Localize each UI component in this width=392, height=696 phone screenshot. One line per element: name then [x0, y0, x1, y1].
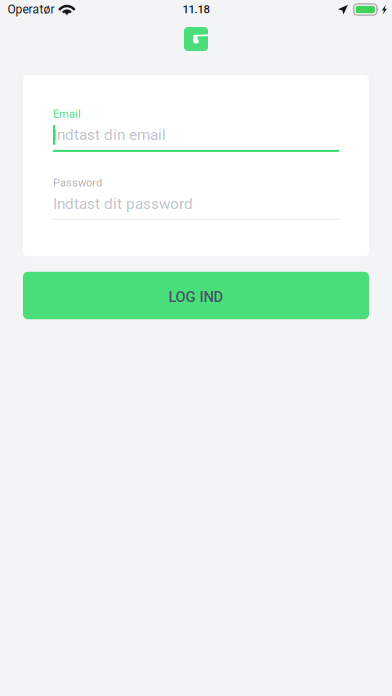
- staticText: Password: [53, 176, 102, 189]
- staticText: Email: [53, 107, 81, 120]
- staticText: 11.18: [182, 3, 209, 16]
- staticText: LOG IND: [168, 288, 223, 306]
- staticText: Operatør: [7, 2, 54, 17]
- button[interactable]: LOG IND: [23, 272, 369, 319]
- staticText: Indtast dit password: [53, 195, 193, 213]
- staticText: Indtast din email: [53, 126, 166, 144]
